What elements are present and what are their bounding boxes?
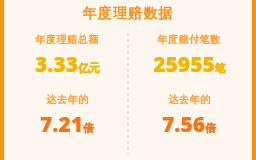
staticText: 年度理赔总额 — [35, 33, 99, 46]
button[interactable]: 年度理赔总额 3.33 亿元 — [6, 33, 128, 154]
button[interactable]: 年度赔付笔数 25955 笔 — [128, 33, 250, 154]
staticText: 7.21倍 — [40, 110, 94, 139]
staticText: 3.33亿元 — [35, 50, 100, 79]
staticText: 达去年的 — [168, 93, 211, 106]
staticText: 25955笔 — [153, 50, 226, 79]
staticText: 达去年的 — [46, 93, 89, 106]
staticText: 年度赔付笔数 — [157, 33, 221, 46]
staticText: 年度理赔数据 — [82, 5, 174, 23]
staticText: 7.56倍 — [162, 110, 216, 139]
